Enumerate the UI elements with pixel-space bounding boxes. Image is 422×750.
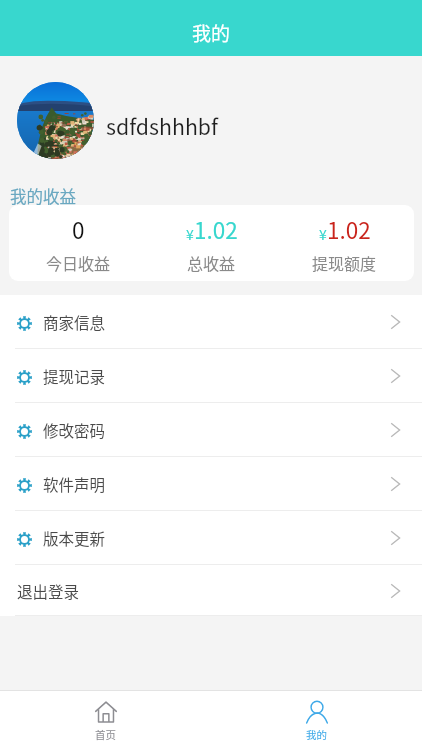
button[interactable]: 修改密码	[0, 403, 422, 457]
staticText: ¥	[319, 224, 327, 244]
staticText: 退出登录	[17, 580, 80, 602]
staticText: 0	[72, 213, 85, 246]
staticText: 1.02	[194, 213, 238, 246]
button[interactable]: 提现记录	[0, 349, 422, 403]
staticText: 软件声明	[43, 473, 106, 495]
button[interactable]: 首页	[0, 691, 211, 750]
staticText: 提现记录	[43, 365, 106, 387]
button[interactable]: 我的	[211, 691, 422, 750]
button[interactable]: 软件声明	[0, 457, 422, 511]
staticText: 我的	[192, 19, 231, 47]
staticText: 修改密码	[43, 419, 106, 441]
button[interactable]: 商家信息	[0, 295, 422, 349]
staticText: 版本更新	[43, 527, 106, 549]
staticText: sdfdshhhbf	[106, 110, 218, 141]
staticText: ¥	[186, 224, 194, 244]
staticText: 总收益	[187, 251, 236, 274]
staticText: 今日收益	[46, 251, 111, 274]
staticText: 我的收益	[10, 184, 76, 208]
staticText: 商家信息	[43, 311, 106, 333]
staticText: 1.02	[327, 213, 371, 246]
staticText: 提现额度	[312, 251, 377, 274]
button[interactable]: 版本更新	[0, 511, 422, 565]
button[interactable]: 退出登录	[0, 565, 422, 616]
staticText: 首页	[95, 727, 116, 742]
staticText: 我的	[306, 727, 327, 742]
